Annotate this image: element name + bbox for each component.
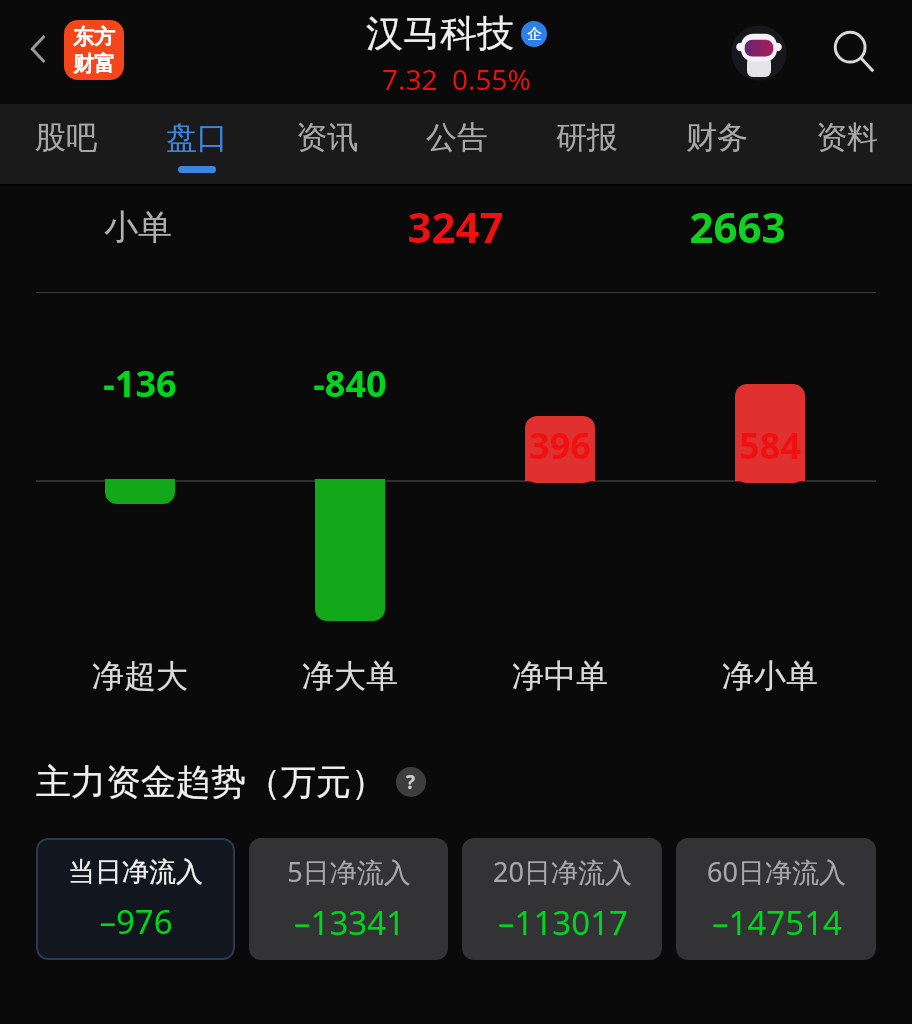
- staticText: 企: [527, 25, 542, 44]
- button[interactable]: Back: [8, 18, 70, 80]
- button[interactable]: 当日净流入: [36, 838, 235, 960]
- staticText: 盘口: [166, 118, 228, 157]
- staticText: 财富: [73, 51, 115, 77]
- staticText: –976: [99, 899, 173, 944]
- staticText: 20日净流入: [493, 853, 632, 890]
- staticText: 公告: [426, 118, 488, 157]
- staticText: 汉马科技: [366, 10, 514, 57]
- staticText: 7.32: [382, 60, 438, 98]
- staticText: 0.55%: [452, 60, 531, 98]
- staticText: –13341: [294, 900, 405, 945]
- staticText: 60日净流入: [707, 853, 846, 890]
- staticText: 财务: [686, 118, 748, 157]
- staticText: 净中单: [512, 656, 608, 696]
- staticText: 净小单: [722, 656, 818, 696]
- staticText: ?: [406, 769, 416, 795]
- staticText: 资料: [816, 118, 878, 157]
- button[interactable]: 5日净流入: [249, 838, 448, 960]
- staticText: 主力资金趋势（万元）: [36, 760, 386, 804]
- staticText: 研报: [556, 118, 618, 157]
- staticText: 584: [739, 421, 801, 470]
- staticText: 2663: [689, 198, 786, 255]
- staticText: –113017: [498, 900, 628, 945]
- staticText: 当日净流入: [68, 855, 203, 889]
- button[interactable]: 盘口: [131, 104, 262, 186]
- button[interactable]: 资讯: [262, 104, 392, 186]
- staticText: 3247: [407, 198, 504, 255]
- staticText: 东方: [73, 24, 115, 50]
- button[interactable]: Assistant: [726, 20, 792, 86]
- staticText: 资讯: [296, 118, 358, 157]
- staticText: 小单: [104, 206, 172, 249]
- staticText: -136: [103, 359, 177, 408]
- staticText: 净超大: [92, 656, 188, 696]
- button[interactable]: 60日净流入: [676, 838, 876, 960]
- button[interactable]: 研报: [522, 104, 652, 186]
- button[interactable]: East Money logo: [64, 20, 124, 80]
- staticText: –147514: [712, 900, 842, 945]
- staticText: 5日净流入: [287, 853, 411, 890]
- staticText: -840: [313, 359, 387, 408]
- staticText: 净大单: [302, 656, 398, 696]
- button[interactable]: 20日净流入: [462, 838, 662, 960]
- button[interactable]: Help: [396, 767, 426, 797]
- button[interactable]: 财务: [652, 104, 782, 186]
- button[interactable]: Search: [818, 16, 890, 88]
- button[interactable]: 股吧: [0, 104, 131, 186]
- button[interactable]: 资料: [782, 104, 912, 186]
- button[interactable]: 公告: [392, 104, 522, 186]
- staticText: 396: [529, 421, 591, 470]
- staticText: 股吧: [35, 118, 97, 157]
